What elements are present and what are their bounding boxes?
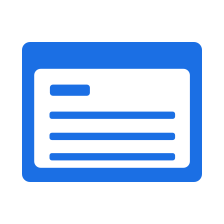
button[interactable]: Document	[22, 42, 202, 182]
